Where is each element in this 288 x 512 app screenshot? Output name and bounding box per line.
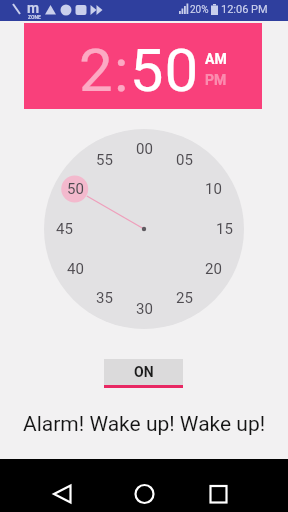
staticText: 30 — [136, 300, 153, 318]
button[interactable]: 2:50 — [24, 23, 262, 109]
button[interactable] — [204, 462, 252, 510]
staticText: ZONE — [28, 14, 41, 20]
staticText: 45 — [56, 220, 73, 238]
staticText: 35 — [96, 289, 113, 307]
staticText: 25 — [176, 289, 193, 307]
button[interactable] — [120, 462, 168, 510]
staticText: 05 — [176, 151, 193, 169]
staticText: m — [27, 0, 40, 16]
staticText: PM — [205, 72, 227, 88]
staticText: 2:50 — [79, 35, 200, 105]
button[interactable]: ON — [104, 359, 183, 388]
staticText: AM — [205, 51, 227, 67]
staticText: 55 — [96, 151, 113, 169]
staticText: 20 — [205, 260, 222, 278]
staticText: Alarm! Wake up! Wake up! — [23, 412, 266, 437]
staticText: ON — [134, 364, 154, 380]
staticText: 00 — [136, 140, 153, 158]
button[interactable] — [36, 462, 84, 510]
staticText: 12:06 PM — [221, 3, 268, 16]
staticText: 10 — [205, 180, 222, 198]
staticText: 15 — [216, 220, 233, 238]
staticText: 20% — [190, 4, 209, 16]
staticText: 50 — [67, 180, 84, 198]
staticText: 40 — [67, 260, 84, 278]
